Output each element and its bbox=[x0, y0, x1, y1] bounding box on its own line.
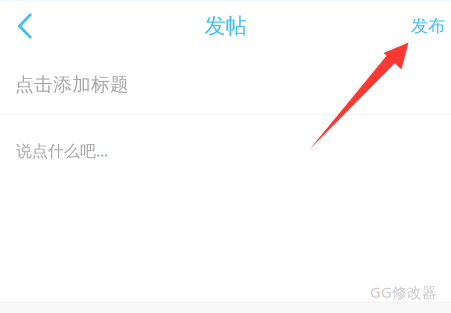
button[interactable]: 发布 bbox=[405, 0, 451, 52]
staticText: 点击添加标题 bbox=[15, 73, 129, 96]
staticText: 发布 bbox=[411, 15, 445, 37]
staticText: 发帖 bbox=[204, 13, 246, 39]
staticText: GG修改器 bbox=[370, 282, 437, 302]
staticText: 说点什么吧... bbox=[16, 140, 108, 161]
button[interactable]: Back bbox=[0, 0, 46, 52]
button[interactable]: 点击添加标题 bbox=[0, 52, 451, 114]
button[interactable]: 说点什么吧... bbox=[0, 115, 451, 274]
